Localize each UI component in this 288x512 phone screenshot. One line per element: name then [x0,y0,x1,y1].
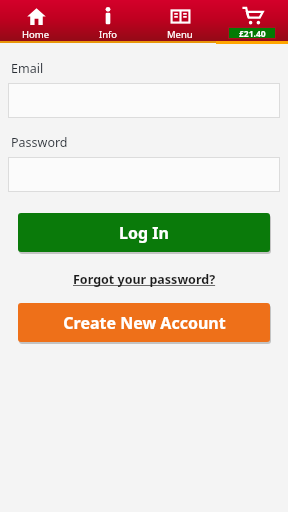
button[interactable]: Forgot your password? [69,269,220,290]
button[interactable] [8,83,280,118]
staticText: Home [22,28,50,41]
staticText: Log In [119,222,169,244]
button[interactable] [8,157,280,192]
button[interactable]: Menu [144,0,216,41]
button[interactable]: Home [0,0,72,41]
staticText: £21.40 [239,28,266,38]
staticText: Password [11,134,68,151]
button[interactable]: Info [72,0,144,41]
staticText: Create New Account [63,312,226,334]
staticText: Menu [167,28,193,41]
staticText: Email [11,60,44,77]
button[interactable]: Cart, £21.40 [216,0,288,41]
staticText: Forgot your password? [73,271,216,288]
button[interactable]: Log In [18,213,270,252]
button[interactable]: Create New Account [18,303,270,342]
staticText: Info [99,28,118,41]
